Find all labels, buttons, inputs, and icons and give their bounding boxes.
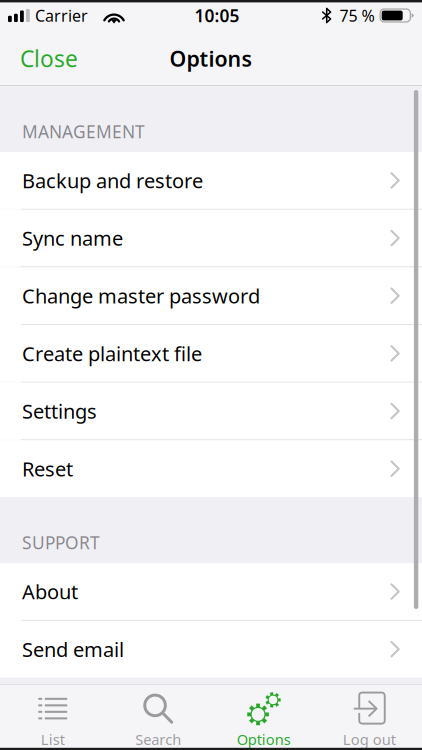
button[interactable]: Backup and restore <box>0 152 422 209</box>
staticText: 10:05 <box>194 4 239 27</box>
staticText: Close <box>20 43 78 73</box>
button[interactable]: Search <box>105 685 211 750</box>
staticText: Options <box>169 44 252 73</box>
staticText: Reset <box>22 455 73 482</box>
staticText: MANAGEMENT <box>22 120 145 143</box>
button[interactable]: Change master password <box>0 267 422 324</box>
button[interactable]: About <box>0 563 422 620</box>
button[interactable]: Sync name <box>0 210 422 267</box>
staticText: 75 % <box>339 5 374 26</box>
button[interactable]: Settings <box>0 383 422 439</box>
button[interactable]: List <box>0 685 105 750</box>
button[interactable]: Close <box>11 34 87 82</box>
button[interactable]: Send email <box>0 621 422 678</box>
button[interactable]: Reset <box>0 440 422 497</box>
staticText: Send email <box>22 636 124 662</box>
staticText: About <box>22 578 78 605</box>
staticText: Options <box>237 730 291 749</box>
staticText: Settings <box>22 398 97 424</box>
staticText: Change master password <box>22 282 260 309</box>
staticText: Carrier <box>35 5 88 26</box>
staticText: Log out <box>343 730 396 749</box>
staticText: List <box>41 730 65 749</box>
button[interactable]: Options <box>211 685 316 750</box>
staticText: Sync name <box>22 225 123 251</box>
staticText: Search <box>135 730 181 749</box>
staticText: Backup and restore <box>22 167 203 194</box>
staticText: Create plaintext file <box>22 340 202 367</box>
staticText: SUPPORT <box>22 531 100 554</box>
button[interactable]: Create plaintext file <box>0 325 422 382</box>
button[interactable]: Log out <box>316 685 422 750</box>
